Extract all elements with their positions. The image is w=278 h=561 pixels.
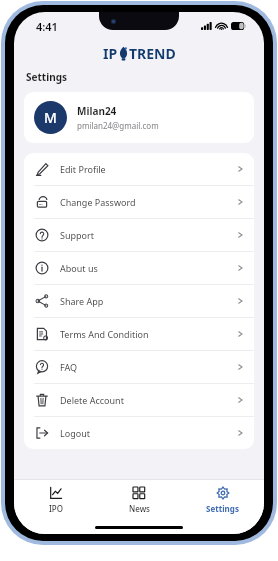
staticText: Delete Account (60, 394, 238, 406)
button[interactable]: Change Password (24, 186, 254, 218)
staticText: News (129, 503, 150, 514)
staticText: M (44, 108, 57, 127)
staticText: IPO (49, 503, 63, 514)
staticText: Edit Profile (60, 163, 238, 175)
staticText: 4:41 (36, 19, 58, 34)
staticText: IP (103, 44, 118, 63)
button[interactable]: Support (24, 219, 254, 251)
staticText: About us (60, 262, 238, 274)
staticText: Settings (206, 503, 239, 514)
staticText: Terms And Condition (60, 328, 238, 340)
button[interactable]: FAQ (24, 351, 254, 383)
staticText: FAQ (60, 361, 238, 373)
button[interactable]: Edit Profile (24, 153, 254, 185)
button[interactable]: Logout (24, 417, 254, 449)
button[interactable]: Delete Account (24, 384, 254, 416)
staticText: Support (60, 229, 238, 241)
staticText: TREND (129, 44, 176, 63)
button[interactable]: Share App (24, 285, 254, 317)
button[interactable]: News (98, 480, 181, 520)
staticText: Logout (60, 427, 238, 439)
staticText: Change Password (60, 196, 238, 208)
button[interactable]: Settings (181, 480, 264, 520)
staticText: Share App (60, 295, 238, 307)
staticText: Settings (26, 70, 67, 84)
button[interactable]: M (24, 92, 254, 143)
staticText: Milan24 (77, 104, 117, 118)
button[interactable]: IPO (14, 480, 98, 520)
staticText: pmilan24@gmail.com (77, 120, 159, 131)
button[interactable]: Terms And Condition (24, 318, 254, 350)
button[interactable]: About us (24, 252, 254, 284)
